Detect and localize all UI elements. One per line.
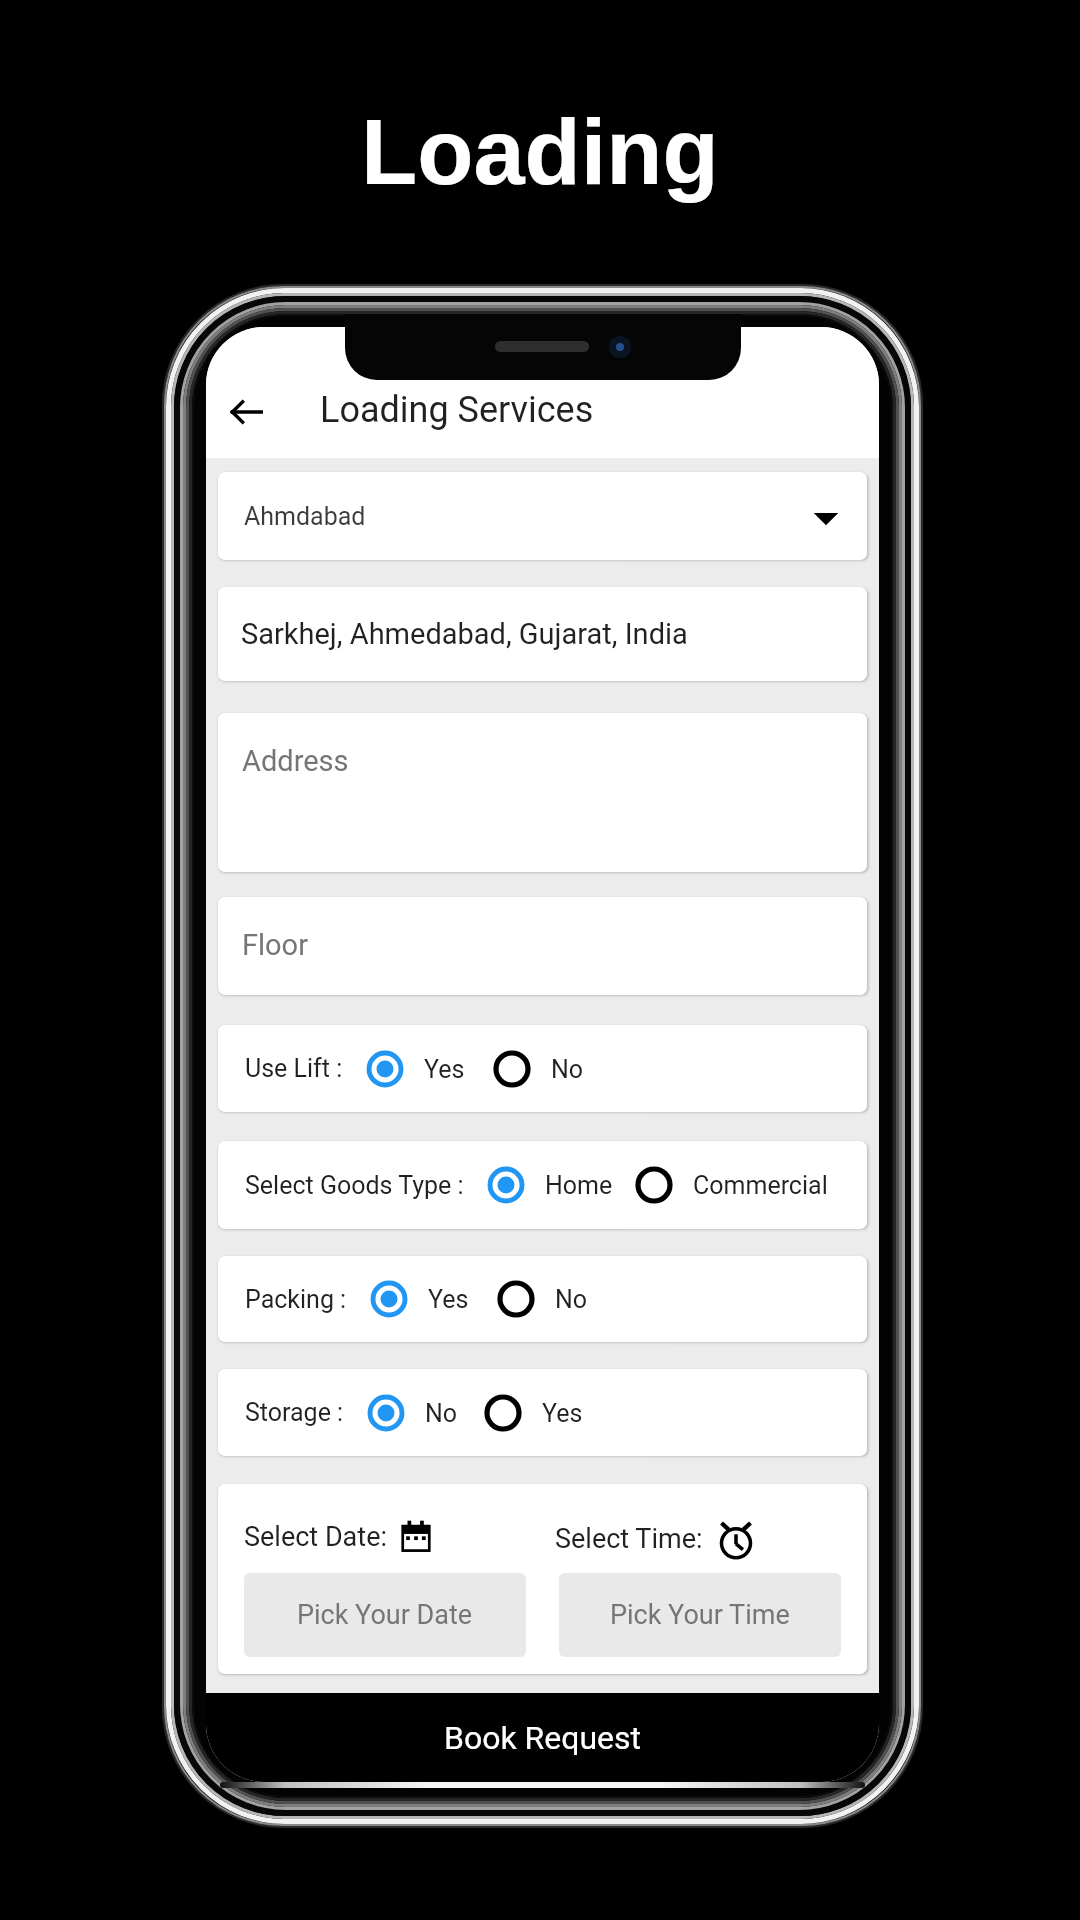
button[interactable]: Commercial xyxy=(633,1164,828,1206)
staticText: Select Goods Type : xyxy=(245,1171,464,1200)
button[interactable]: Yes xyxy=(482,1392,583,1434)
button[interactable]: Storage : xyxy=(218,1369,867,1456)
staticText: Ahmdabad xyxy=(244,502,366,531)
staticText: Pick Your Time xyxy=(610,1599,790,1631)
button[interactable]: Packing : xyxy=(218,1256,867,1342)
button[interactable]: Home xyxy=(485,1164,613,1206)
button[interactable]: Back xyxy=(218,384,274,440)
button[interactable]: Sarkhej, Ahmedabad, Gujarat, India xyxy=(218,587,867,681)
staticText: No xyxy=(555,1285,588,1314)
staticText: No xyxy=(551,1055,584,1084)
staticText: Commercial xyxy=(693,1171,828,1200)
button[interactable]: Ahmdabad xyxy=(218,472,867,560)
button[interactable]: Pick Your Date xyxy=(244,1573,526,1657)
staticText: Yes xyxy=(542,1399,583,1428)
button[interactable]: Select Goods Type : xyxy=(218,1141,867,1229)
button[interactable]: Book Request xyxy=(206,1693,879,1782)
staticText: Yes xyxy=(424,1055,465,1084)
staticText: Yes xyxy=(428,1285,469,1314)
button[interactable]: Yes xyxy=(364,1048,465,1090)
staticText: Address xyxy=(242,744,349,778)
staticText: Storage : xyxy=(245,1398,344,1427)
button[interactable]: Yes xyxy=(368,1278,469,1320)
staticText: Use Lift : xyxy=(245,1054,343,1083)
staticText: Packing : xyxy=(245,1285,347,1314)
staticText: Book Request xyxy=(444,1719,642,1757)
button[interactable]: No xyxy=(495,1278,588,1320)
staticText: Home xyxy=(545,1171,613,1200)
button[interactable]: Floor xyxy=(218,897,867,995)
staticText: Loading xyxy=(361,101,719,204)
staticText: Select Date: xyxy=(244,1521,387,1553)
button[interactable]: No xyxy=(365,1392,458,1434)
staticText: Loading Services xyxy=(320,389,594,431)
button[interactable]: Address xyxy=(218,713,867,872)
button[interactable]: No xyxy=(491,1048,584,1090)
staticText: Select Time: xyxy=(555,1523,703,1555)
staticText: Floor xyxy=(242,928,308,962)
staticText: No xyxy=(425,1399,458,1428)
button[interactable]: Pick Your Time xyxy=(559,1573,841,1657)
staticText: Sarkhej, Ahmedabad, Gujarat, India xyxy=(241,617,688,651)
button[interactable]: Select Date: xyxy=(218,1484,867,1674)
staticText: Pick Your Date xyxy=(297,1599,473,1631)
button[interactable]: Use Lift : xyxy=(218,1025,867,1112)
